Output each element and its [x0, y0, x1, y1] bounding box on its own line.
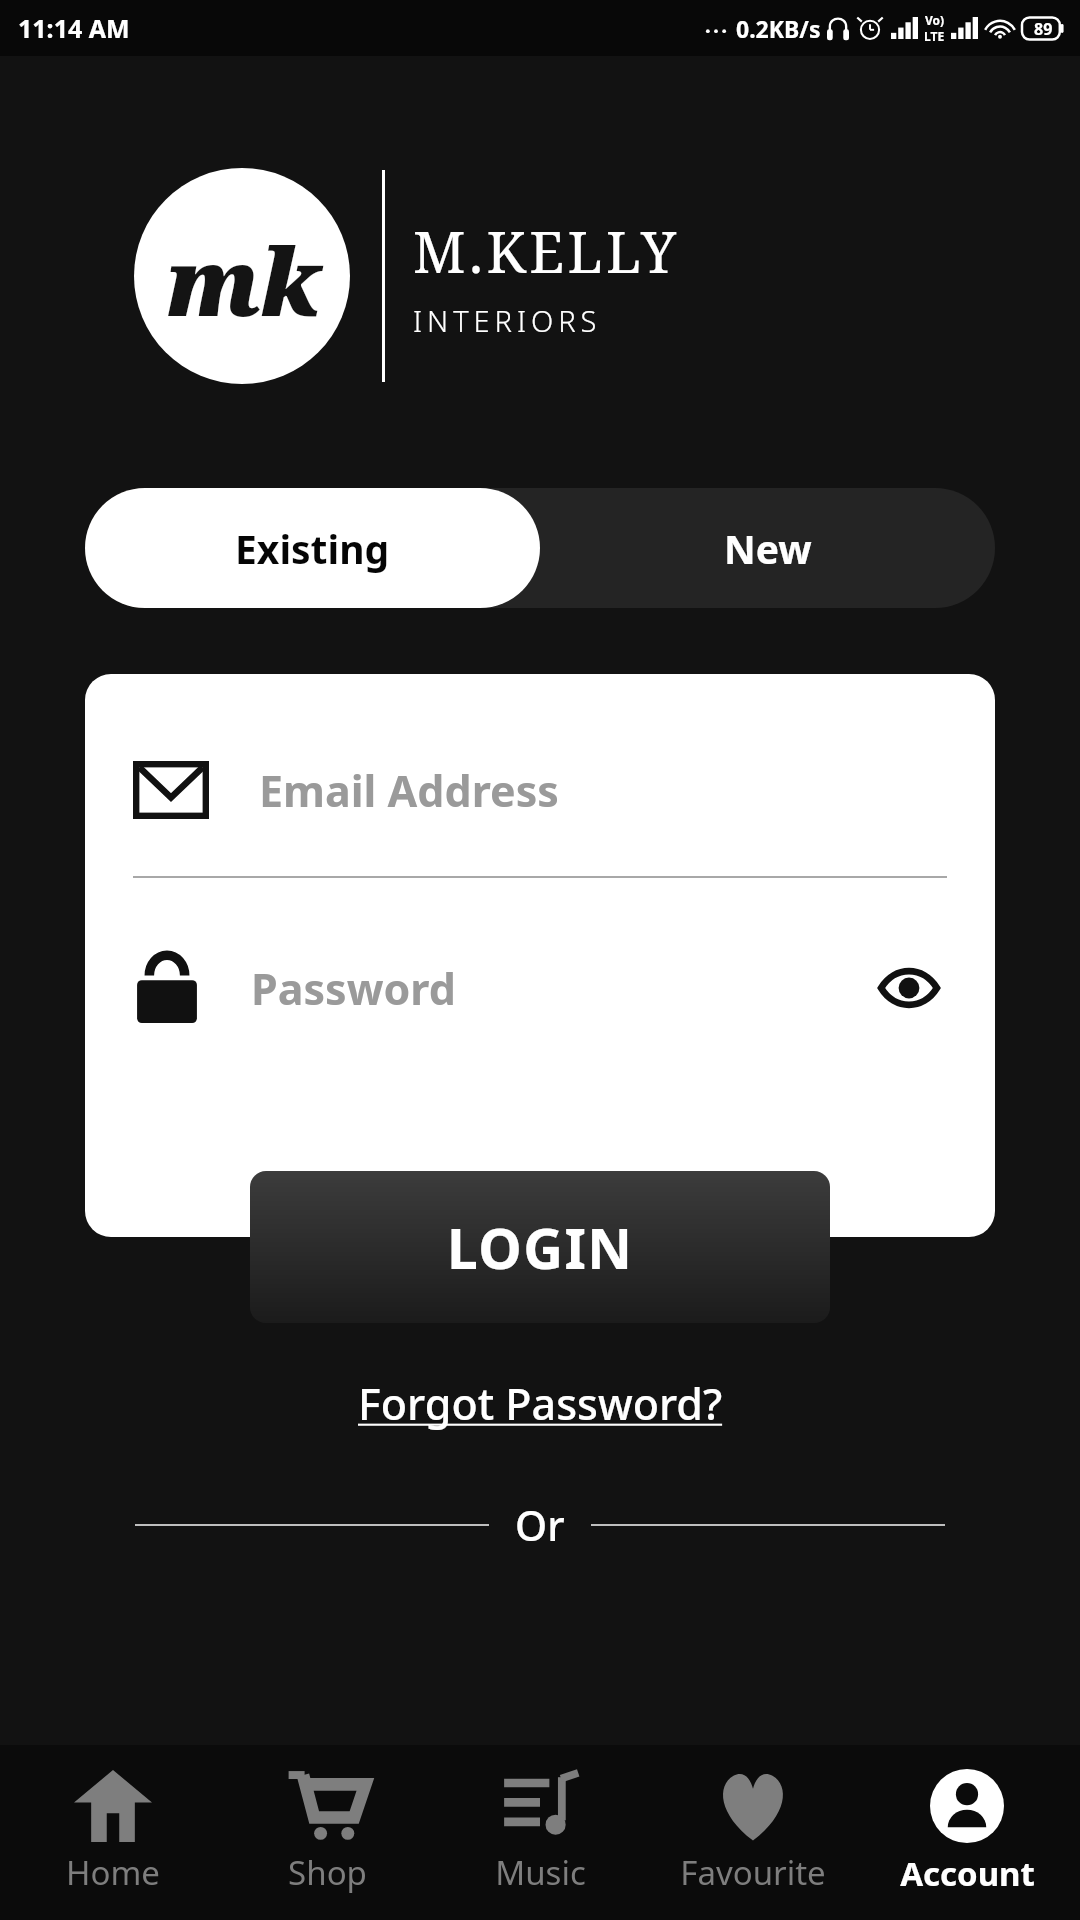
staticText: Forgot Password?	[358, 1374, 723, 1433]
staticText: 11:14 AM	[18, 11, 130, 45]
staticText: LOGIN	[447, 1210, 634, 1285]
button[interactable]: Account	[867, 1763, 1067, 1902]
staticText: Existing	[235, 522, 390, 575]
staticText: Or	[515, 1497, 565, 1553]
button[interactable]: Show password	[871, 950, 947, 1026]
staticText: Password	[251, 959, 456, 1018]
staticText: Vo)	[925, 12, 945, 28]
button[interactable]: Email Address	[133, 742, 947, 838]
staticText: M.KELLY	[413, 213, 680, 289]
button[interactable]: Forgot Password?	[346, 1368, 735, 1439]
staticText: Shop	[288, 1850, 367, 1895]
button[interactable]: Shop	[227, 1764, 427, 1901]
staticText: INTERIORS	[413, 301, 602, 340]
staticText: Music	[495, 1850, 586, 1895]
button[interactable]: Password	[133, 940, 947, 1036]
staticText: New	[724, 522, 812, 575]
staticText: Favourite	[680, 1850, 826, 1895]
staticText: 0.2KB/s	[736, 13, 821, 44]
staticText: LTE	[924, 28, 945, 44]
button[interactable]: LOGIN	[250, 1171, 830, 1323]
staticText: Home	[66, 1850, 160, 1895]
button[interactable]: New	[540, 488, 995, 608]
staticText: 89	[1034, 18, 1053, 40]
button[interactable]: Home	[13, 1764, 213, 1901]
staticText: Account	[900, 1851, 1035, 1896]
staticText: Email Address	[259, 761, 559, 820]
staticText: mk	[165, 216, 320, 344]
button[interactable]: Music	[440, 1764, 640, 1901]
button[interactable]: Favourite	[653, 1764, 853, 1901]
button[interactable]: Existing	[85, 488, 540, 608]
